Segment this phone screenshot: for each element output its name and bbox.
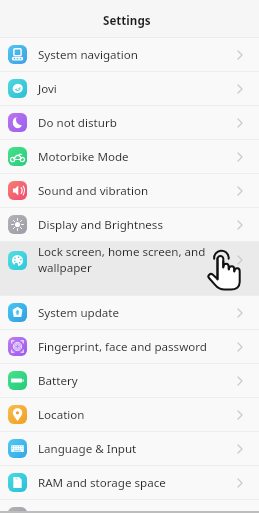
button[interactable]: Language & Input [0,432,259,465]
staticText: Lock screen, home screen, and wallpaper [38,244,210,276]
other: Tap pointer [203,246,241,292]
button[interactable]: System update [0,296,259,329]
button[interactable]: System navigation [0,38,259,71]
staticText: Fingerprint, face and password [38,339,210,355]
staticText: Apps [38,509,210,513]
staticText: Location [38,407,210,423]
staticText: Display and Brightness [38,217,210,233]
button[interactable]: Do not disturb [0,106,259,139]
button[interactable]: Fingerprint, face and password [0,330,259,363]
staticText: Motorbike Mode [38,149,210,165]
staticText: System update [38,305,210,321]
staticText: Language & Input [38,441,210,457]
staticText: Settings [103,13,151,29]
button[interactable]: Sound and vibration [0,174,259,207]
button[interactable]: Jovi [0,72,259,105]
staticText: RAM and storage space [38,475,210,491]
button[interactable]: Battery [0,364,259,397]
button[interactable]: Display and Brightness [0,208,259,241]
button[interactable]: Lock screen, home screen, and wallpaper [0,242,259,295]
staticText: System navigation [38,47,210,63]
staticText: Sound and vibration [38,183,210,199]
staticText: Jovi [38,81,210,97]
button[interactable]: Apps [0,500,259,513]
staticText: Do not disturb [38,115,210,131]
staticText: Battery [38,373,210,389]
button[interactable]: Location [0,398,259,431]
button[interactable]: Motorbike Mode [0,140,259,173]
button[interactable]: RAM and storage space [0,466,259,499]
